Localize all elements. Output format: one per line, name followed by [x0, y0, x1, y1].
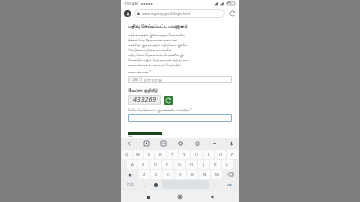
button[interactable]: Home	[175, 192, 185, 202]
staticText: பதிவு செய்ய தேவையான விபரங்களை இட	[128, 52, 185, 56]
staticText: .	[214, 182, 216, 187]
button[interactable]: Recents	[143, 192, 153, 202]
button[interactable]: Comma	[140, 180, 150, 189]
staticText: வேண்டும் எனும் பிறகு தரவுகள் ஒரு தடவை	[128, 57, 189, 61]
staticText: H	[190, 162, 194, 168]
button[interactable]: S	[138, 160, 149, 169]
staticText: X	[155, 172, 158, 178]
button[interactable]: Reload	[228, 9, 236, 17]
button[interactable]: More options	[210, 139, 218, 147]
button[interactable]: X	[151, 170, 162, 179]
staticText: ,	[144, 182, 146, 187]
button[interactable]: Stickers	[142, 139, 150, 147]
button[interactable]: K	[210, 160, 221, 169]
staticText: பதிவு செய்யப்பட்ட பயனாளர்	[128, 22, 188, 29]
staticText: F	[166, 162, 169, 168]
button[interactable]: F	[162, 160, 173, 169]
button[interactable]: Account	[124, 10, 131, 17]
staticText: E	[148, 152, 151, 158]
button[interactable]	[128, 114, 232, 122]
staticText: T	[171, 152, 174, 158]
staticText: 433269	[133, 95, 157, 105]
button[interactable]: I	[203, 150, 214, 159]
staticText: V	[179, 172, 182, 178]
staticText: G	[178, 162, 182, 168]
button[interactable]: C	[163, 170, 174, 179]
button[interactable]: B	[187, 170, 198, 179]
button[interactable]: J	[198, 160, 209, 169]
staticText: M	[215, 172, 219, 178]
button[interactable]: W	[133, 150, 143, 159]
staticText: www.registry.gov.lk/login.html	[142, 11, 191, 16]
staticText: கொடுக்கப்பட்டுள்ள கட்டங்களை	[128, 47, 172, 51]
staticText: B	[191, 172, 194, 178]
staticText: U	[195, 152, 199, 158]
button[interactable]: Voice input	[227, 139, 235, 147]
button[interactable]: A	[127, 160, 137, 169]
button[interactable]: Y	[179, 150, 190, 159]
staticText: D	[154, 162, 158, 168]
staticText: 7:59 AM	[124, 1, 138, 6]
button[interactable]: Symbols	[122, 180, 139, 189]
button[interactable]: V	[175, 170, 186, 179]
button[interactable]: Z	[139, 170, 150, 179]
button[interactable]: M	[211, 170, 222, 179]
button[interactable]: www.registry.gov.lk/login.html	[137, 9, 222, 18]
staticText: +94	[132, 78, 138, 82]
staticText: கையடக்கமாக உடனடியாக பெறப்படும்	[128, 62, 181, 66]
button[interactable]: Enter	[221, 180, 238, 189]
button[interactable]: H	[186, 160, 197, 169]
staticText: C	[167, 172, 170, 178]
staticText: Z	[143, 172, 146, 178]
button[interactable]: L	[222, 160, 233, 169]
button[interactable]: O	[215, 150, 226, 159]
button[interactable]: R	[155, 150, 166, 159]
button[interactable]: Refresh captcha	[164, 96, 173, 105]
button[interactable]: Clipboard	[193, 139, 201, 147]
staticText: R	[159, 152, 162, 158]
staticText: கையடக்க எண் *	[128, 70, 151, 74]
button[interactable]: N	[199, 170, 210, 179]
staticText: P	[231, 152, 234, 158]
staticText: ?123	[127, 183, 134, 187]
staticText: 0771107 96	[144, 78, 162, 82]
button[interactable]: Back	[125, 139, 133, 147]
staticText: பின	[128, 135, 133, 138]
button[interactable]: D	[150, 160, 161, 169]
staticText: A	[131, 162, 134, 168]
staticText: Q	[125, 152, 129, 158]
staticText: எண்ணை இத் தளத்தில் பதிவுசெய்ய இங்கே	[128, 42, 187, 46]
staticText: K	[214, 162, 217, 168]
staticText: வேப்சா குறியீடு	[128, 87, 158, 93]
staticText: நீங்கள் பெற தேவையான கையடக்க	[128, 37, 177, 41]
staticText: I	[208, 152, 210, 158]
button[interactable]: T	[167, 150, 178, 159]
staticText: மேலே கொடுக்கப்பட்ட இலக்கங்களை உள்ளிடுக *	[128, 108, 192, 112]
button[interactable]: E	[144, 150, 154, 159]
button[interactable]: U	[191, 150, 202, 159]
staticText: எதிர்காலத்தில் இணையத்தள சேவைகளை	[128, 32, 186, 36]
button[interactable]: Q	[122, 150, 132, 159]
staticText: O	[219, 152, 223, 158]
button[interactable]: Back	[207, 192, 217, 202]
button[interactable]: Shift	[122, 170, 138, 179]
button[interactable]: G	[174, 160, 185, 169]
staticText: L	[226, 162, 229, 168]
button[interactable]: Language	[151, 180, 161, 189]
button[interactable]: Settings	[176, 139, 184, 147]
staticText: S	[142, 162, 145, 168]
button[interactable]: +94	[128, 76, 232, 83]
staticText: W	[136, 152, 140, 158]
button[interactable]: GIF	[159, 139, 167, 147]
button[interactable]: Backspace	[223, 170, 238, 179]
staticText: J	[203, 162, 205, 168]
staticText: N	[203, 172, 207, 178]
button[interactable]: P	[227, 150, 238, 159]
staticText: Y	[183, 152, 186, 158]
